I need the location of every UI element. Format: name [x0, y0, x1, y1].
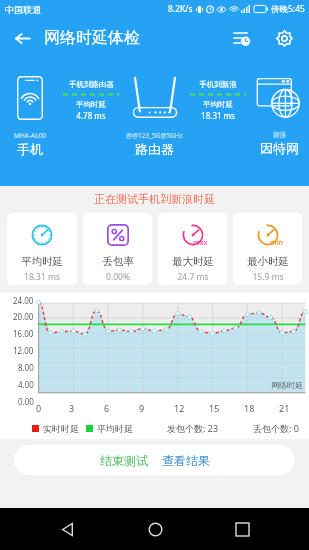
- staticText: 4.78 ms: [76, 110, 106, 121]
- staticText: 20.00: [13, 311, 34, 322]
- staticText: 24.00: [13, 295, 34, 306]
- staticText: 12.00: [13, 345, 34, 356]
- staticText: 平均时延: [97, 423, 133, 434]
- staticText: 12: [174, 402, 185, 414]
- button[interactable]: Home: [135, 509, 175, 549]
- staticText: 结束测试: [100, 453, 148, 468]
- staticText: 0.00: [18, 396, 34, 407]
- staticText: min: [270, 238, 283, 248]
- staticText: 6: [104, 402, 110, 414]
- button[interactable]: Back: [47, 509, 87, 549]
- staticText: MHA-AL00: [14, 131, 46, 140]
- staticText: 0: [36, 402, 42, 414]
- staticText: 4.00: [18, 379, 34, 390]
- staticText: 因特网: [260, 140, 299, 156]
- staticText: 手机到新浪: [199, 80, 237, 89]
- staticText: 丢包率: [102, 255, 134, 268]
- staticText: 平均时延: [76, 100, 106, 109]
- button[interactable]: 平均时延: [7, 213, 77, 285]
- staticText: 3: [69, 402, 75, 414]
- staticText: max: [193, 238, 208, 248]
- button[interactable]: History: [225, 21, 259, 55]
- button[interactable]: 结束测试: [96, 450, 152, 471]
- staticText: @@123_5G@5GHz: [126, 131, 183, 140]
- staticText: 网络时延: [271, 380, 303, 390]
- staticText: 最小时延: [247, 255, 289, 268]
- staticText: 15: [209, 402, 220, 414]
- staticText: 新浪: [273, 131, 286, 139]
- staticText: 傍晚5:45: [271, 3, 305, 15]
- staticText: 8.2K/s: [168, 3, 193, 15]
- staticText: 查看结果: [162, 453, 210, 468]
- button[interactable]: min: [233, 213, 302, 285]
- staticText: 手机到路由器: [69, 80, 114, 89]
- staticText: 18.31 ms: [24, 271, 60, 283]
- staticText: 18: [244, 402, 255, 414]
- button[interactable]: max: [158, 213, 227, 285]
- staticText: 网络时延体检: [44, 28, 140, 48]
- staticText: 24.7 ms: [177, 271, 209, 283]
- button[interactable]: Settings: [267, 21, 301, 55]
- staticText: 丢包个数: 0: [253, 422, 299, 434]
- staticText: 21: [279, 402, 290, 414]
- staticText: 平均时延: [203, 100, 233, 109]
- button[interactable]: 查看结果: [158, 450, 214, 471]
- staticText: 实时时延: [43, 423, 79, 434]
- button[interactable]: 丢包率: [83, 213, 152, 285]
- staticText: 9: [139, 402, 145, 414]
- staticText: 路由器: [135, 141, 174, 157]
- staticText: 发包个数: 23: [167, 422, 219, 434]
- staticText: 18.31 ms: [201, 110, 235, 121]
- staticText: 8.00: [18, 362, 34, 373]
- staticText: 16.00: [13, 328, 34, 339]
- button[interactable]: Back: [6, 22, 38, 54]
- staticText: 0.00%: [106, 271, 130, 283]
- button[interactable]: Recents: [222, 509, 262, 549]
- staticText: 最大时延: [172, 255, 214, 268]
- staticText: 15.9 ms: [252, 271, 284, 283]
- staticText: 正在测试手机到新浪时延: [0, 192, 309, 206]
- staticText: 平均时延: [21, 255, 63, 268]
- staticText: 手机: [17, 141, 43, 157]
- staticText: 中国联通: [5, 4, 41, 15]
